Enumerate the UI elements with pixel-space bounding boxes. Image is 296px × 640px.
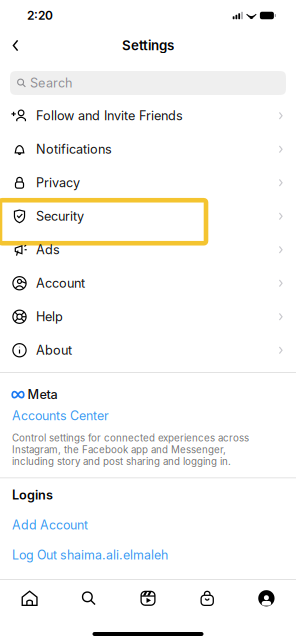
button[interactable]: Search — [0, 60, 296, 99]
button[interactable]: Ads — [0, 233, 296, 266]
staticText: Control settings for connected experienc… — [12, 432, 249, 467]
staticText: Add Account — [12, 518, 88, 533]
staticText: 2:20 — [27, 8, 53, 23]
button[interactable]: Privacy — [0, 166, 296, 199]
button[interactable]: Log Out shaima.ali.elmaleh — [0, 533, 178, 563]
staticText: Account — [36, 276, 85, 291]
button[interactable]: Home — [0, 578, 59, 615]
staticText: Security — [36, 209, 84, 224]
button[interactable]: Accounts Center — [0, 402, 119, 423]
button[interactable]: Add Account — [0, 503, 98, 533]
staticText: Accounts Center — [12, 408, 109, 423]
staticText: Ads — [36, 242, 60, 257]
button[interactable]: Notifications — [0, 132, 296, 166]
button[interactable]: Follow and Invite Friends — [0, 99, 296, 132]
staticText: Logins — [12, 487, 53, 503]
button[interactable]: Reels — [118, 578, 178, 615]
button[interactable]: Account — [0, 266, 296, 300]
button[interactable]: Profile — [237, 578, 296, 615]
button[interactable]: About — [0, 333, 296, 367]
staticText: Log Out shaima.ali.elmaleh — [12, 548, 168, 563]
button[interactable]: Search — [59, 578, 118, 615]
button[interactable]: Help — [0, 300, 296, 333]
staticText: Privacy — [36, 175, 80, 190]
staticText: Help — [36, 309, 63, 324]
button[interactable]: Security — [0, 199, 296, 233]
staticText: Notifications — [36, 142, 112, 157]
button[interactable]: Back — [0, 32, 30, 58]
staticText: Search — [30, 75, 72, 91]
staticText: About — [36, 343, 72, 358]
button[interactable]: Shop — [178, 578, 237, 615]
staticText: Settings — [122, 37, 174, 53]
staticText: Meta — [27, 387, 57, 402]
staticText: Follow and Invite Friends — [36, 108, 183, 123]
